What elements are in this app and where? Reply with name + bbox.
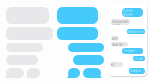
staticText: ut lab — [134, 57, 143, 60]
staticText: et dolor — [111, 63, 119, 70]
staticText: Consectetur ad — [112, 20, 129, 27]
staticText: Tempor incid — [123, 49, 135, 56]
staticText: Lorem ipsum dolor — [123, 9, 133, 20]
staticText: magna — [130, 69, 141, 72]
staticText: Adipiscing — [128, 30, 144, 37]
staticText: Sed do eiu — [112, 43, 123, 50]
staticText: elit — [112, 37, 117, 40]
